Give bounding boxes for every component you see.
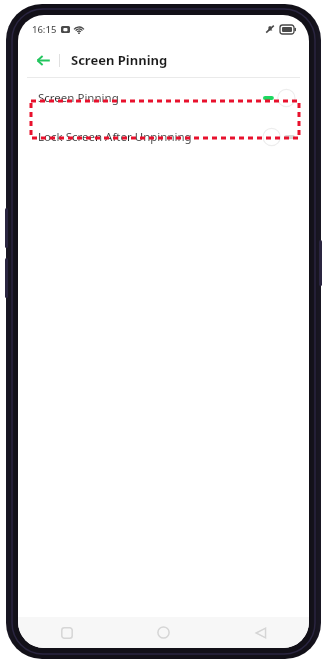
staticText: Lock Screen After Unpinning bbox=[38, 129, 263, 145]
button[interactable]: Back bbox=[28, 45, 58, 75]
button[interactable]: Recent apps bbox=[18, 617, 115, 648]
button[interactable]: Back bbox=[212, 617, 309, 648]
button[interactable]: Home bbox=[115, 617, 212, 648]
staticText: Screen Pinning bbox=[71, 51, 168, 69]
button[interactable]: Screen Pinning bbox=[18, 78, 309, 117]
staticText: Screen Pinning bbox=[38, 90, 263, 106]
button[interactable]: Lock Screen After Unpinning bbox=[18, 117, 309, 157]
button[interactable]: On bbox=[263, 89, 295, 107]
button[interactable]: Off bbox=[263, 128, 295, 146]
staticText: 16:15 bbox=[32, 23, 57, 36]
